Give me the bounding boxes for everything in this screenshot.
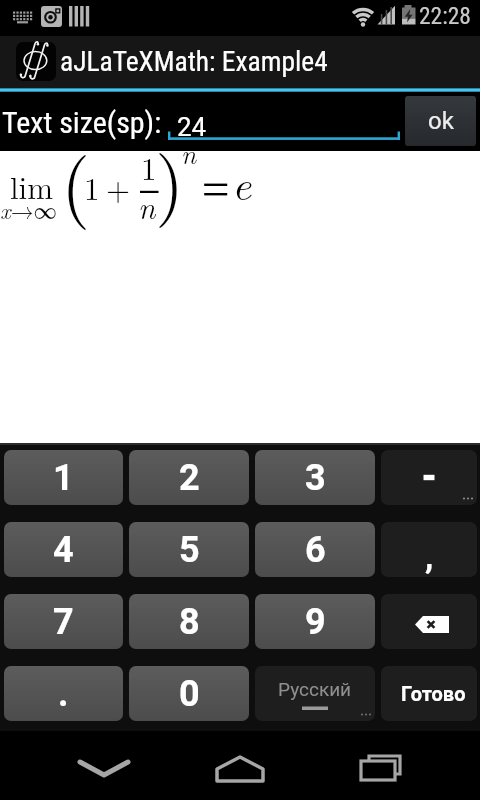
button[interactable]: 0	[129, 666, 249, 721]
button[interactable]: 3	[255, 450, 375, 505]
button[interactable]: 4	[4, 522, 123, 577]
button[interactable]: 6	[255, 522, 375, 577]
staticText: 24	[177, 112, 207, 142]
button[interactable]: .	[4, 666, 123, 721]
staticText: 0	[179, 673, 200, 715]
staticText: 22:28	[419, 2, 471, 30]
staticText: 1	[84, 165, 100, 209]
staticText: aJLaTeXMath: Example4	[60, 45, 328, 77]
button[interactable]	[208, 741, 272, 789]
staticText: x→∞	[0, 193, 57, 226]
staticText: e	[232, 153, 252, 212]
button[interactable]: Готово	[381, 666, 477, 721]
button[interactable]: 2	[129, 450, 249, 505]
staticText: 5	[179, 529, 200, 571]
button[interactable]	[348, 741, 412, 789]
button[interactable]: ,	[381, 522, 477, 577]
button[interactable]: 9	[255, 594, 375, 649]
button[interactable]: 1	[4, 450, 123, 505]
staticText: 3	[305, 457, 326, 499]
button[interactable]: 8	[129, 594, 249, 649]
staticText: 1	[53, 457, 74, 499]
staticText: 1	[141, 145, 157, 189]
button[interactable]	[72, 741, 136, 789]
staticText: 2	[179, 457, 200, 499]
button[interactable]	[168, 98, 400, 142]
staticText: Готово	[401, 682, 466, 705]
staticText: ,	[425, 536, 434, 576]
staticText: 4	[53, 529, 74, 571]
staticText: n	[181, 134, 197, 172]
staticText: (	[61, 126, 91, 232]
staticText: Русский	[278, 678, 352, 700]
staticText: 6	[305, 529, 326, 571]
button[interactable]	[381, 450, 477, 505]
button[interactable]: Русский	[255, 666, 375, 721]
staticText: .	[58, 673, 69, 715]
button[interactable]	[381, 594, 477, 649]
staticText: lim	[10, 164, 54, 208]
staticText: Text size(sp):	[2, 105, 162, 140]
button[interactable]: 7	[4, 594, 123, 649]
staticText: n	[138, 184, 156, 228]
staticText: 7	[53, 601, 74, 643]
staticText: ok	[428, 107, 454, 135]
staticText: 9	[305, 601, 326, 643]
staticText: )	[155, 124, 185, 230]
staticText: 8	[179, 601, 200, 643]
button[interactable]: 5	[129, 522, 249, 577]
staticText: +	[106, 165, 131, 209]
button[interactable]: ok	[405, 96, 476, 146]
